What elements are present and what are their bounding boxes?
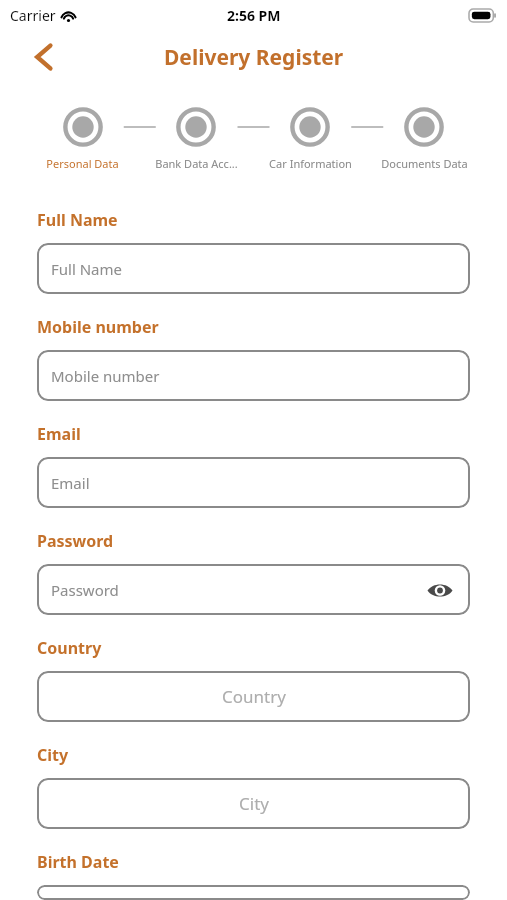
staticText: Email <box>51 473 90 493</box>
button[interactable]: Full Name <box>37 243 470 294</box>
staticText: Personal Data <box>46 156 119 171</box>
button[interactable]: Show password <box>423 573 457 607</box>
button[interactable]: Back <box>22 35 66 79</box>
staticText: Email <box>37 423 81 445</box>
button[interactable] <box>37 885 470 900</box>
staticText: Mobile number <box>51 366 160 386</box>
staticText: Country <box>222 685 286 708</box>
button[interactable]: City <box>37 778 470 829</box>
staticText: Birth Date <box>37 851 119 873</box>
staticText: Delivery Register <box>164 43 344 72</box>
staticText: Country <box>37 637 102 659</box>
staticText: Password <box>51 580 119 600</box>
button[interactable]: Password <box>37 564 470 615</box>
staticText: Documents Data <box>381 156 468 171</box>
button[interactable]: Country <box>37 671 470 722</box>
staticText: City <box>239 792 269 815</box>
staticText: Mobile number <box>37 316 159 338</box>
button[interactable]: Mobile number <box>37 350 470 401</box>
button[interactable]: Email <box>37 457 470 508</box>
staticText: Car Information <box>269 156 352 171</box>
staticText: Full Name <box>51 259 122 279</box>
staticText: Carrier <box>10 6 56 25</box>
staticText: 2:56 PM <box>227 6 281 25</box>
staticText: City <box>37 744 69 766</box>
staticText: Full Name <box>37 209 118 231</box>
staticText: Bank Data Acc... <box>155 156 238 171</box>
staticText: Password <box>37 530 114 552</box>
